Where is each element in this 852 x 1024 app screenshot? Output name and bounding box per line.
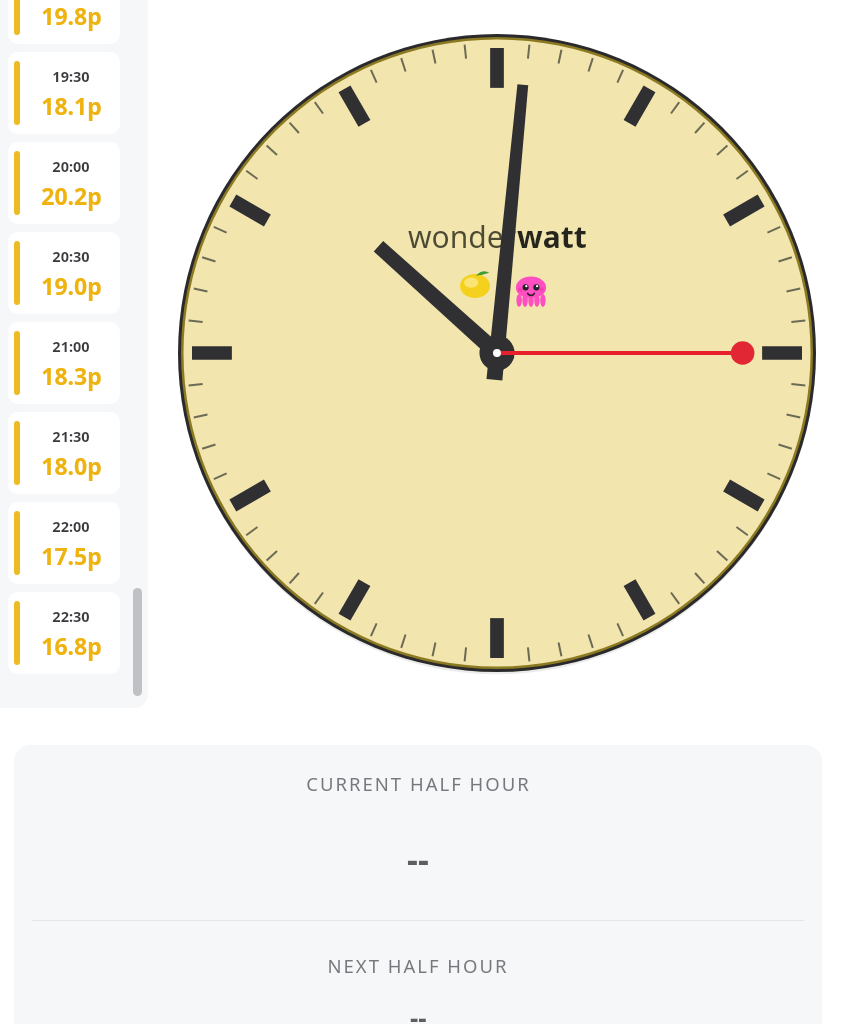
button[interactable]: Analog clock face (178, 34, 816, 672)
staticText: 20:30 (52, 246, 90, 266)
button[interactable]: 20:30 (8, 232, 120, 314)
button[interactable]: 22:30 (8, 592, 120, 674)
staticText: 22:00 (52, 516, 90, 536)
staticText: 19.0p (41, 270, 102, 301)
staticText: 22:30 (52, 606, 90, 626)
staticText: CURRENT HALF HOUR (306, 771, 531, 796)
staticText: 21:30 (52, 426, 90, 446)
staticText: wonder (408, 216, 517, 257)
button[interactable]: 20:00 (8, 142, 120, 224)
button[interactable]: CURRENT HALF HOUR (14, 771, 822, 796)
staticText: -- (407, 836, 429, 882)
staticText: 18.1p (41, 90, 102, 121)
button[interactable]: 21:00 (8, 322, 120, 404)
staticText: watt (517, 216, 587, 257)
button[interactable]: 21:30 (8, 412, 120, 494)
staticText: -- (410, 1000, 427, 1024)
button[interactable]: 19:00 (8, 0, 120, 44)
staticText: NEXT HALF HOUR (327, 953, 509, 978)
staticText: 18.0p (41, 450, 102, 481)
button[interactable]: 19:30 (8, 52, 120, 134)
staticText: 20.2p (41, 180, 102, 211)
staticText: 19.8p (41, 0, 102, 31)
staticText: 17.5p (41, 540, 102, 571)
staticText: 19:30 (52, 66, 90, 86)
staticText: 18.3p (41, 360, 102, 391)
button[interactable]: 22:00 (8, 502, 120, 584)
staticText: 16.8p (41, 630, 102, 661)
staticText: 21:00 (52, 336, 90, 356)
button[interactable]: NEXT HALF HOUR (14, 953, 822, 978)
staticText: 20:00 (52, 156, 90, 176)
